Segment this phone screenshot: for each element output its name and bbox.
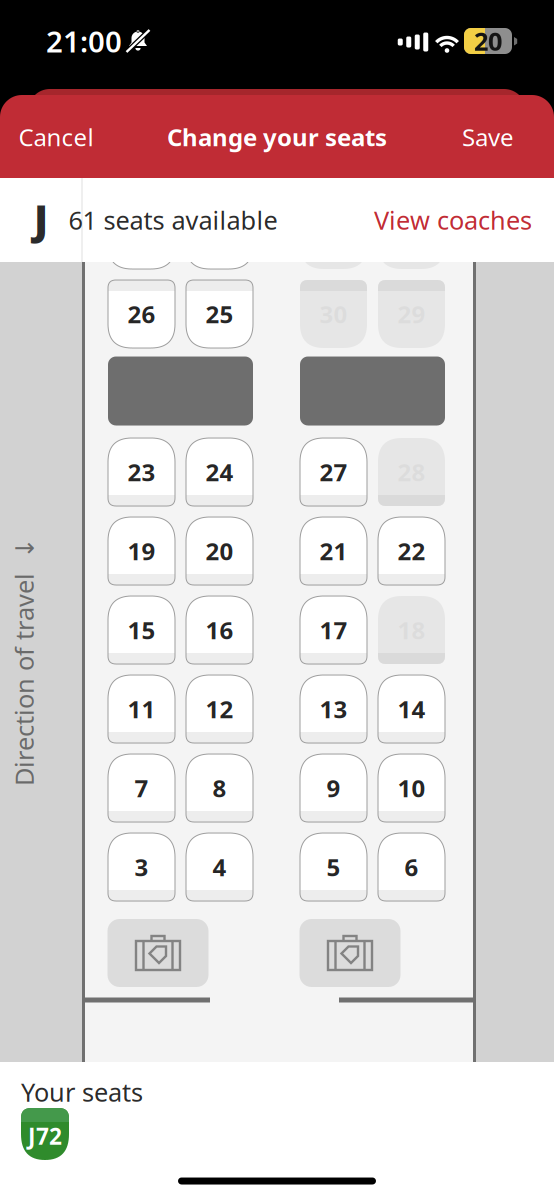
button[interactable]: 32: [108, 201, 175, 269]
button[interactable]: 20: [186, 517, 253, 585]
button[interactable]: 31: [186, 201, 253, 269]
button[interactable]: 17: [300, 596, 367, 664]
staticText: 6: [404, 851, 418, 883]
staticText: 31: [205, 219, 233, 251]
staticText: 28: [397, 456, 425, 488]
button[interactable]: 4: [186, 833, 253, 901]
staticText: 22: [397, 535, 425, 567]
staticText: Change your seats: [167, 121, 387, 153]
staticText: 11: [127, 693, 155, 725]
staticText: 7: [134, 772, 148, 804]
button[interactable]: 12: [186, 675, 253, 743]
button[interactable]: 3: [108, 833, 175, 901]
staticText: 20: [474, 24, 502, 58]
button[interactable]: 13: [300, 675, 367, 743]
button[interactable]: 11: [108, 675, 175, 743]
button[interactable]: 21: [300, 517, 367, 585]
staticText: Save: [462, 121, 514, 153]
staticText: 14: [397, 693, 425, 725]
staticText: 23: [127, 456, 155, 488]
staticText: Direction of travel ↓: [0, 645, 148, 679]
staticText: 17: [319, 614, 347, 646]
staticText: 8: [212, 772, 226, 804]
button[interactable]: 19: [108, 517, 175, 585]
button[interactable]: 14: [378, 675, 445, 743]
staticText: 33: [397, 219, 425, 251]
button[interactable]: 8: [186, 754, 253, 822]
button[interactable]: 15: [108, 596, 175, 664]
staticText: 18: [397, 614, 425, 646]
button[interactable]: 16: [186, 596, 253, 664]
button[interactable]: 29: [378, 280, 445, 348]
button[interactable]: 25: [186, 280, 253, 348]
button[interactable]: 22: [378, 517, 445, 585]
button[interactable]: Cancel: [18, 121, 93, 153]
staticText: 10: [397, 772, 425, 804]
button[interactable]: 6: [378, 833, 445, 901]
button[interactable]: 9: [300, 754, 367, 822]
button[interactable]: 10: [378, 754, 445, 822]
staticText: Your seats: [21, 1075, 143, 1109]
button[interactable]: 33: [378, 201, 445, 269]
staticText: 32: [127, 219, 155, 251]
button[interactable]: 23: [108, 438, 175, 506]
staticText: 21: [319, 535, 347, 567]
staticText: 5: [326, 851, 340, 883]
button[interactable]: Save: [462, 121, 514, 153]
button[interactable]: 5: [300, 833, 367, 901]
button[interactable]: 26: [108, 280, 175, 348]
staticText: 27: [319, 456, 347, 488]
button[interactable]: 24: [186, 438, 253, 506]
button[interactable]: 34: [300, 201, 367, 269]
button[interactable]: 30: [300, 280, 367, 348]
staticText: 16: [205, 614, 233, 646]
staticText: 13: [319, 693, 347, 725]
staticText: 20: [205, 535, 233, 567]
staticText: 26: [127, 298, 155, 330]
staticText: 30: [319, 298, 347, 330]
button[interactable]: 18: [378, 596, 445, 664]
staticText: 3: [134, 851, 148, 883]
staticText: 15: [127, 614, 155, 646]
staticText: 12: [205, 693, 233, 725]
staticText: Cancel: [18, 121, 93, 153]
staticText: J72: [28, 1121, 62, 1151]
staticText: 9: [326, 772, 340, 804]
staticText: 24: [205, 456, 233, 488]
button[interactable]: 28: [378, 438, 445, 506]
staticText: 29: [397, 298, 425, 330]
button[interactable]: 27: [300, 438, 367, 506]
button[interactable]: View coaches: [374, 203, 532, 237]
staticText: 61 seats available: [68, 203, 277, 237]
staticText: 21:00: [46, 21, 122, 60]
staticText: 25: [205, 298, 233, 330]
staticText: View coaches: [374, 203, 532, 237]
staticText: J: [34, 192, 48, 245]
staticText: 4: [212, 851, 226, 883]
staticText: 19: [127, 535, 155, 567]
button[interactable]: 7: [108, 754, 175, 822]
